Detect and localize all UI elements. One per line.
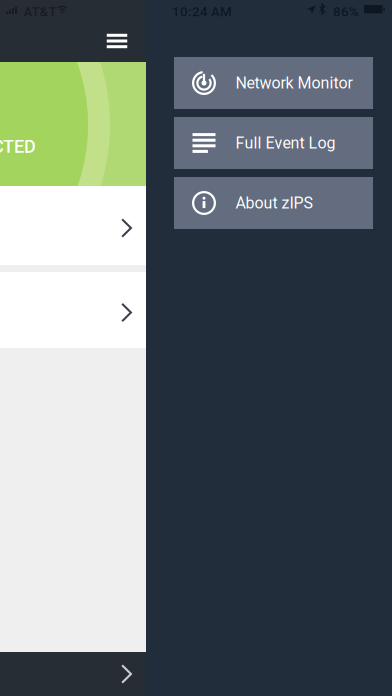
staticText: AT&T bbox=[23, 4, 56, 20]
button[interactable]: About zIPS bbox=[174, 177, 373, 229]
button[interactable] bbox=[0, 186, 146, 265]
staticText: Network Monitor bbox=[235, 74, 352, 92]
staticText: Full Event Log bbox=[235, 134, 335, 152]
staticText: 10:24 AM bbox=[172, 4, 232, 20]
staticText: 86% bbox=[333, 4, 359, 20]
button[interactable]: Network Monitor bbox=[174, 57, 373, 109]
button[interactable] bbox=[0, 272, 146, 348]
button[interactable] bbox=[0, 652, 146, 696]
button[interactable]: Full Event Log bbox=[174, 117, 373, 169]
staticText: PROTECTED bbox=[0, 136, 36, 157]
staticText: About zIPS bbox=[235, 194, 313, 212]
button[interactable]: Menu bbox=[95, 20, 139, 62]
